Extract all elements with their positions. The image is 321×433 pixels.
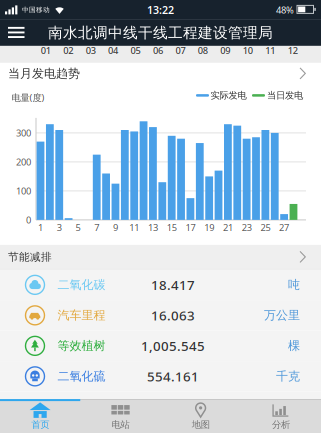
staticText: 23 — [242, 221, 252, 234]
staticText: 554.161 — [147, 367, 199, 385]
button[interactable]: 等效植树 — [0, 331, 321, 361]
staticText: 1 — [38, 221, 43, 234]
staticText: 200 — [16, 156, 31, 168]
button[interactable]: 12 — [281, 45, 304, 56]
button[interactable]: 10 — [236, 45, 259, 56]
staticText: 地图 — [192, 419, 210, 430]
button[interactable]: 01 — [34, 45, 57, 56]
button[interactable]: 08 — [192, 45, 214, 56]
staticText: 15 — [167, 221, 177, 234]
staticText: 1,005.545 — [141, 337, 205, 355]
staticText: 电站 — [111, 419, 129, 430]
staticText: 当月发电趋势 — [8, 66, 80, 81]
staticText: 13 — [148, 221, 158, 234]
staticText: 千克 — [276, 369, 300, 384]
staticText: 汽车里程 — [57, 308, 105, 323]
staticText: 04 — [108, 44, 118, 57]
staticText: 南水北调中线干线工程建设管理局 — [48, 24, 273, 42]
button[interactable]: 节能减排 — [0, 245, 321, 269]
staticText: 棵 — [288, 338, 300, 353]
button[interactable]: 04 — [102, 45, 124, 56]
staticText: 06 — [153, 44, 163, 57]
staticText: 19 — [204, 221, 214, 234]
staticText: 27 — [279, 221, 289, 234]
button[interactable]: 当月发电趋势 — [0, 63, 321, 84]
staticText: 当日发电 — [267, 90, 303, 101]
button[interactable]: 二氧化碳 — [0, 270, 321, 300]
staticText: 11 — [265, 44, 275, 57]
staticText: 9 — [113, 221, 118, 234]
staticText: 分析 — [272, 419, 290, 430]
button[interactable]: 二氧化硫 — [0, 361, 321, 392]
staticText: 0 — [26, 214, 31, 226]
staticText: 07 — [175, 44, 185, 57]
button[interactable]: 06 — [147, 45, 169, 56]
staticText: 等效植树 — [57, 338, 105, 353]
staticText: 12 — [288, 44, 298, 57]
staticText: 17 — [185, 221, 195, 234]
staticText: 二氧化硫 — [57, 369, 105, 384]
staticText: 3 — [57, 221, 62, 234]
button[interactable]: 02 — [57, 45, 79, 56]
button[interactable]: 首页 — [0, 399, 80, 433]
staticText: 中国移动 — [22, 6, 50, 14]
button[interactable]: 分析 — [241, 399, 321, 433]
staticText: 实际发电 — [210, 90, 246, 101]
button[interactable]: 05 — [124, 45, 147, 56]
staticText: 01 — [41, 44, 51, 57]
staticText: 21 — [223, 221, 233, 234]
staticText: 16.063 — [151, 306, 195, 324]
staticText: 电量(度) — [11, 91, 44, 104]
staticText: 13:22 — [147, 3, 174, 17]
staticText: 11 — [129, 221, 139, 234]
staticText: 05 — [130, 44, 140, 57]
button[interactable]: 电站 — [80, 399, 160, 433]
staticText: 首页 — [31, 419, 49, 430]
staticText: 03 — [86, 44, 96, 57]
button[interactable]: 菜单 — [0, 20, 31, 46]
staticText: 吨 — [288, 277, 300, 292]
staticText: 02 — [63, 44, 73, 57]
button[interactable]: 03 — [79, 45, 102, 56]
button[interactable]: 07 — [169, 45, 192, 56]
staticText: 25 — [260, 221, 270, 234]
staticText: 10 — [243, 44, 253, 57]
staticText: 7 — [94, 221, 99, 234]
button[interactable]: 地图 — [160, 399, 241, 433]
button[interactable]: 09 — [214, 45, 236, 56]
staticText: 18.417 — [151, 276, 195, 294]
staticText: 09 — [220, 44, 230, 57]
button[interactable]: 11 — [259, 45, 281, 56]
staticText: 二氧化碳 — [57, 277, 105, 292]
staticText: 5 — [75, 221, 80, 234]
staticText: 节能减排 — [8, 250, 52, 263]
staticText: 100 — [16, 185, 31, 197]
staticText: 300 — [16, 127, 31, 139]
staticText: 48% — [276, 4, 294, 16]
staticText: 万公里 — [264, 308, 300, 323]
button[interactable]: 汽车里程 — [0, 300, 321, 331]
staticText: 08 — [198, 44, 208, 57]
